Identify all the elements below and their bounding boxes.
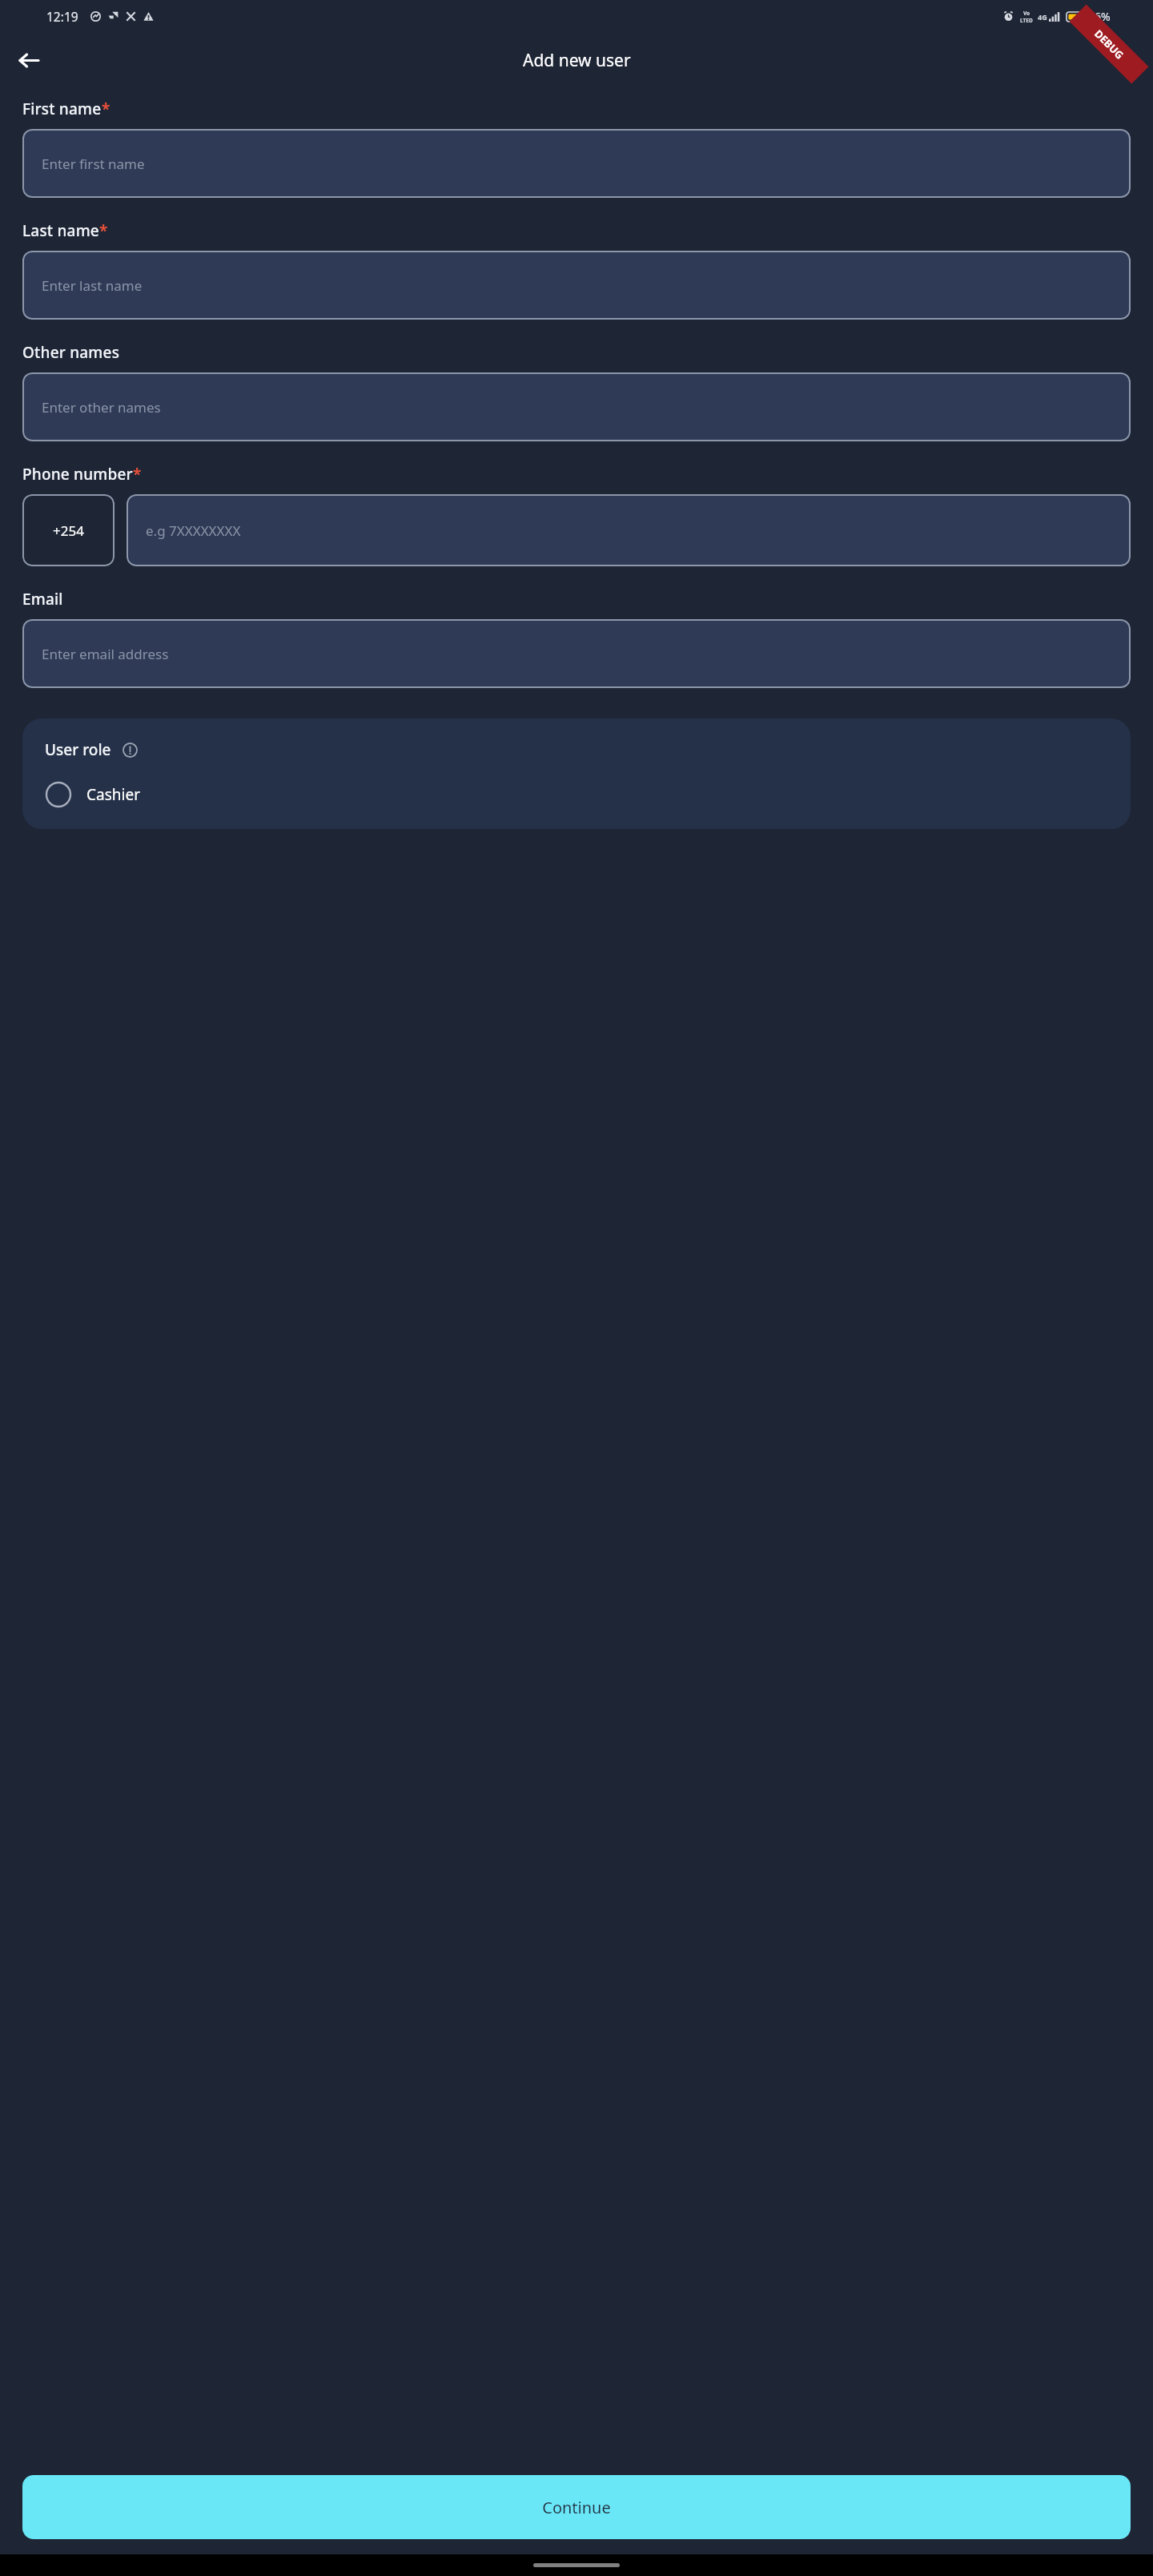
- staticText: *: [102, 99, 110, 119]
- button[interactable]: +254: [22, 494, 114, 566]
- staticText: First name: [22, 99, 102, 119]
- staticText: LTED: [1020, 17, 1033, 24]
- staticText: 4G: [1038, 12, 1047, 22]
- button[interactable]: Info about user role: [119, 739, 140, 760]
- button[interactable]: e.g 7XXXXXXXX: [127, 494, 1131, 566]
- staticText: 76%: [1088, 9, 1111, 24]
- staticText: Enter last name: [42, 276, 143, 295]
- staticText: Enter first name: [42, 155, 145, 173]
- staticText: Last name: [22, 220, 99, 241]
- staticText: e.g 7XXXXXXXX: [146, 521, 241, 540]
- staticText: 12:19: [46, 8, 78, 25]
- button[interactable]: Enter email address: [22, 619, 1131, 688]
- staticText: Other names: [22, 342, 120, 363]
- staticText: Enter other names: [42, 398, 161, 417]
- staticText: DEBUG: [1091, 27, 1127, 62]
- staticText: User role: [45, 739, 111, 760]
- staticText: Cashier: [86, 784, 140, 805]
- staticText: Email: [22, 589, 63, 610]
- staticText: Vo: [1023, 10, 1030, 17]
- staticText: *: [99, 220, 108, 241]
- button[interactable]: Continue: [22, 2475, 1131, 2539]
- staticText: Phone number: [22, 464, 133, 485]
- staticText: *: [133, 464, 142, 485]
- staticText: +254: [53, 521, 84, 540]
- button[interactable]: Enter other names: [22, 372, 1131, 441]
- button[interactable]: Back: [8, 39, 50, 81]
- staticText: Continue: [542, 2497, 611, 2518]
- button[interactable]: Cashier: [45, 781, 1108, 808]
- staticText: Add new user: [523, 49, 631, 72]
- staticText: Enter email address: [42, 645, 169, 663]
- button[interactable]: Enter last name: [22, 251, 1131, 320]
- button[interactable]: Enter first name: [22, 129, 1131, 198]
